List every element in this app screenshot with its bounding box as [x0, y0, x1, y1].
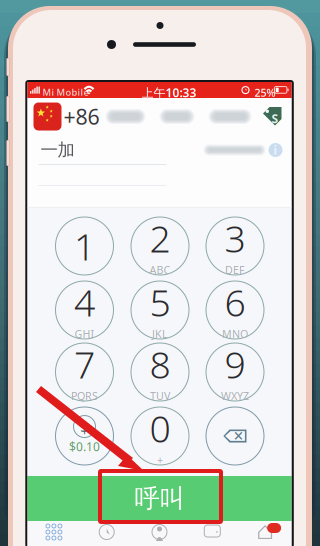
staticText: 7	[74, 339, 95, 389]
staticText: Mi Mobile	[42, 86, 88, 98]
staticText: MNO	[222, 327, 248, 341]
staticText: DEF	[225, 263, 245, 277]
staticText: +86	[63, 102, 99, 131]
button[interactable]: Delete	[206, 407, 264, 465]
staticText: GHI	[74, 327, 94, 341]
button[interactable]: Wallet	[186, 521, 239, 546]
staticText: ABC	[149, 263, 170, 277]
button[interactable]: 2	[131, 217, 189, 275]
staticText: PQRS	[71, 389, 98, 403]
staticText: $	[80, 416, 89, 437]
staticText: 9	[224, 339, 245, 389]
staticText: 4	[74, 277, 95, 327]
staticText: 6	[224, 277, 245, 327]
button[interactable]: 3	[206, 217, 264, 275]
staticText: 0	[149, 403, 170, 453]
staticText: 上午10:33	[141, 85, 196, 100]
staticText: WXYZ	[221, 389, 249, 403]
button[interactable]: 9	[206, 343, 264, 401]
staticText: 8	[149, 339, 170, 389]
staticText: 1	[74, 221, 95, 271]
staticText: ×	[233, 424, 243, 447]
button[interactable]: Recents	[80, 521, 133, 546]
staticText: $0.10	[69, 438, 100, 454]
button[interactable]: 8	[131, 343, 189, 401]
staticText: 一加	[40, 139, 74, 161]
staticText: 25%	[254, 85, 275, 100]
staticText: 5	[149, 277, 170, 327]
staticText: JKL	[152, 327, 168, 341]
button[interactable]: 4	[55, 281, 113, 339]
button[interactable]: 1	[55, 217, 113, 275]
button[interactable]: 呼叫	[27, 476, 291, 521]
button[interactable]: Home	[239, 521, 291, 546]
button[interactable]: Info	[268, 143, 282, 157]
staticText: +	[157, 453, 163, 467]
button[interactable]: 6	[206, 281, 264, 339]
button[interactable]: Rate	[261, 105, 283, 127]
button[interactable]: Keypad	[27, 521, 80, 546]
staticText: i	[273, 142, 277, 158]
button[interactable]: 7	[55, 343, 113, 401]
button[interactable]: 0	[131, 407, 189, 465]
button[interactable]: Contacts	[133, 521, 186, 546]
staticText: 呼叫	[134, 483, 184, 514]
staticText: S	[271, 110, 278, 126]
staticText: TUV	[150, 389, 170, 403]
staticText: 3	[224, 213, 245, 263]
staticText: 2	[149, 213, 170, 263]
button[interactable]: Rate per minute	[55, 407, 113, 465]
button[interactable]: 5	[131, 281, 189, 339]
